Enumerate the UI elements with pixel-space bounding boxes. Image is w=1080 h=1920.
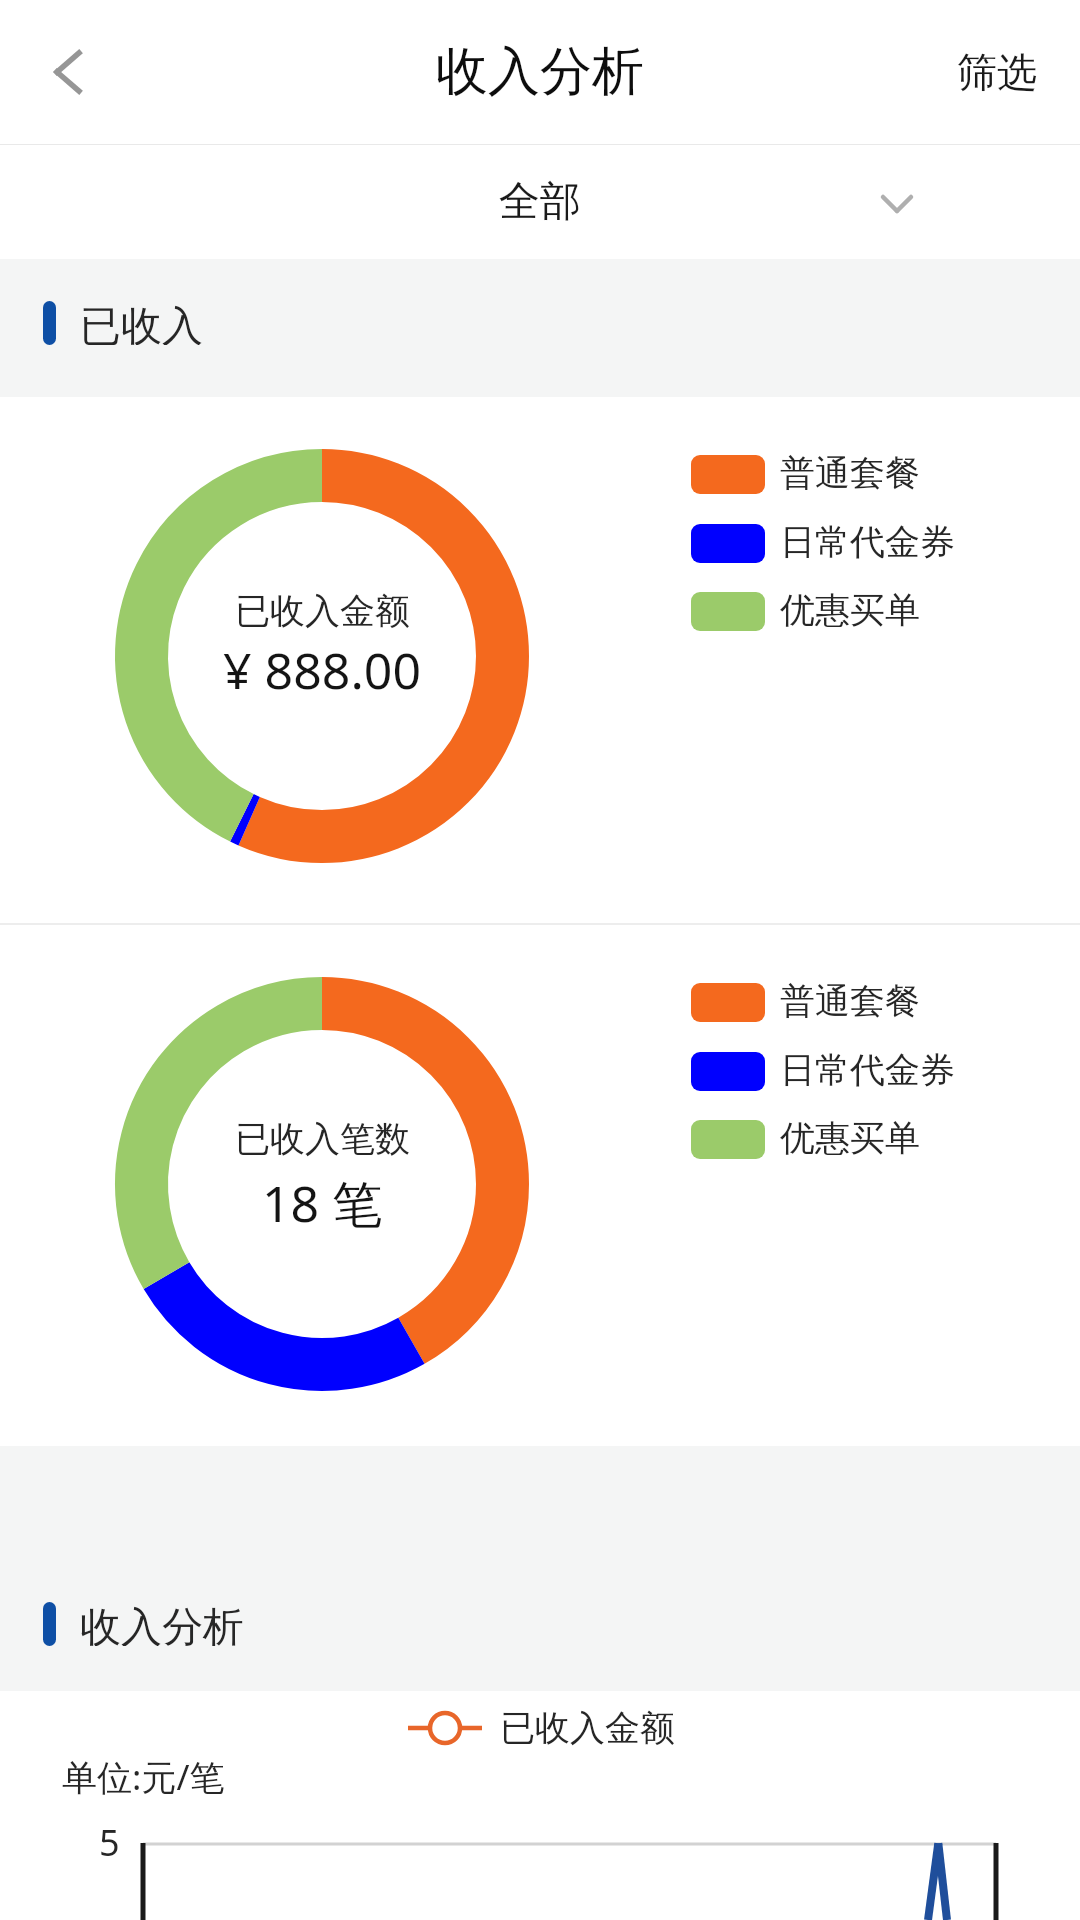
staticText: 全部 [499,176,581,228]
button[interactable]: 优惠买单 [691,1117,1021,1161]
staticText: 已收入金额 [500,1706,675,1750]
button[interactable]: 收入分析 [43,1602,244,1646]
staticText: 优惠买单 [780,588,920,632]
staticText: 5 [99,1818,120,1867]
button[interactable]: 普通套餐 [691,980,1021,1024]
staticText: 已收入笔数 [235,1117,410,1161]
button[interactable]: 日常代金券 [691,521,1021,565]
button[interactable]: 筛选 [927,0,1080,144]
button[interactable]: Expand filter options [880,145,1080,259]
button[interactable]: 已收入 [43,301,203,345]
staticText: 已收入 [80,301,203,345]
button[interactable]: 全部 [0,145,1080,259]
staticText: 单位:元/笔 [62,1753,225,1801]
staticText: 18 笔 [262,1169,383,1237]
staticText: 日常代金券 [780,520,955,564]
staticText: 日常代金券 [780,1048,955,1092]
staticText: 已收入金额 [235,589,410,633]
button[interactable]: 日常代金券 [691,1049,1021,1093]
button[interactable]: Back [0,0,136,144]
staticText: 收入分析 [436,39,644,105]
staticText: 筛选 [957,47,1037,97]
staticText: 普通套餐 [780,451,920,495]
staticText: ¥ 888.00 [223,636,421,704]
button[interactable]: 普通套餐 [691,452,1021,496]
staticText: 优惠买单 [780,1116,920,1160]
staticText: 收入分析 [80,1602,244,1646]
button[interactable]: 优惠买单 [691,589,1021,633]
staticText: 普通套餐 [780,979,920,1023]
